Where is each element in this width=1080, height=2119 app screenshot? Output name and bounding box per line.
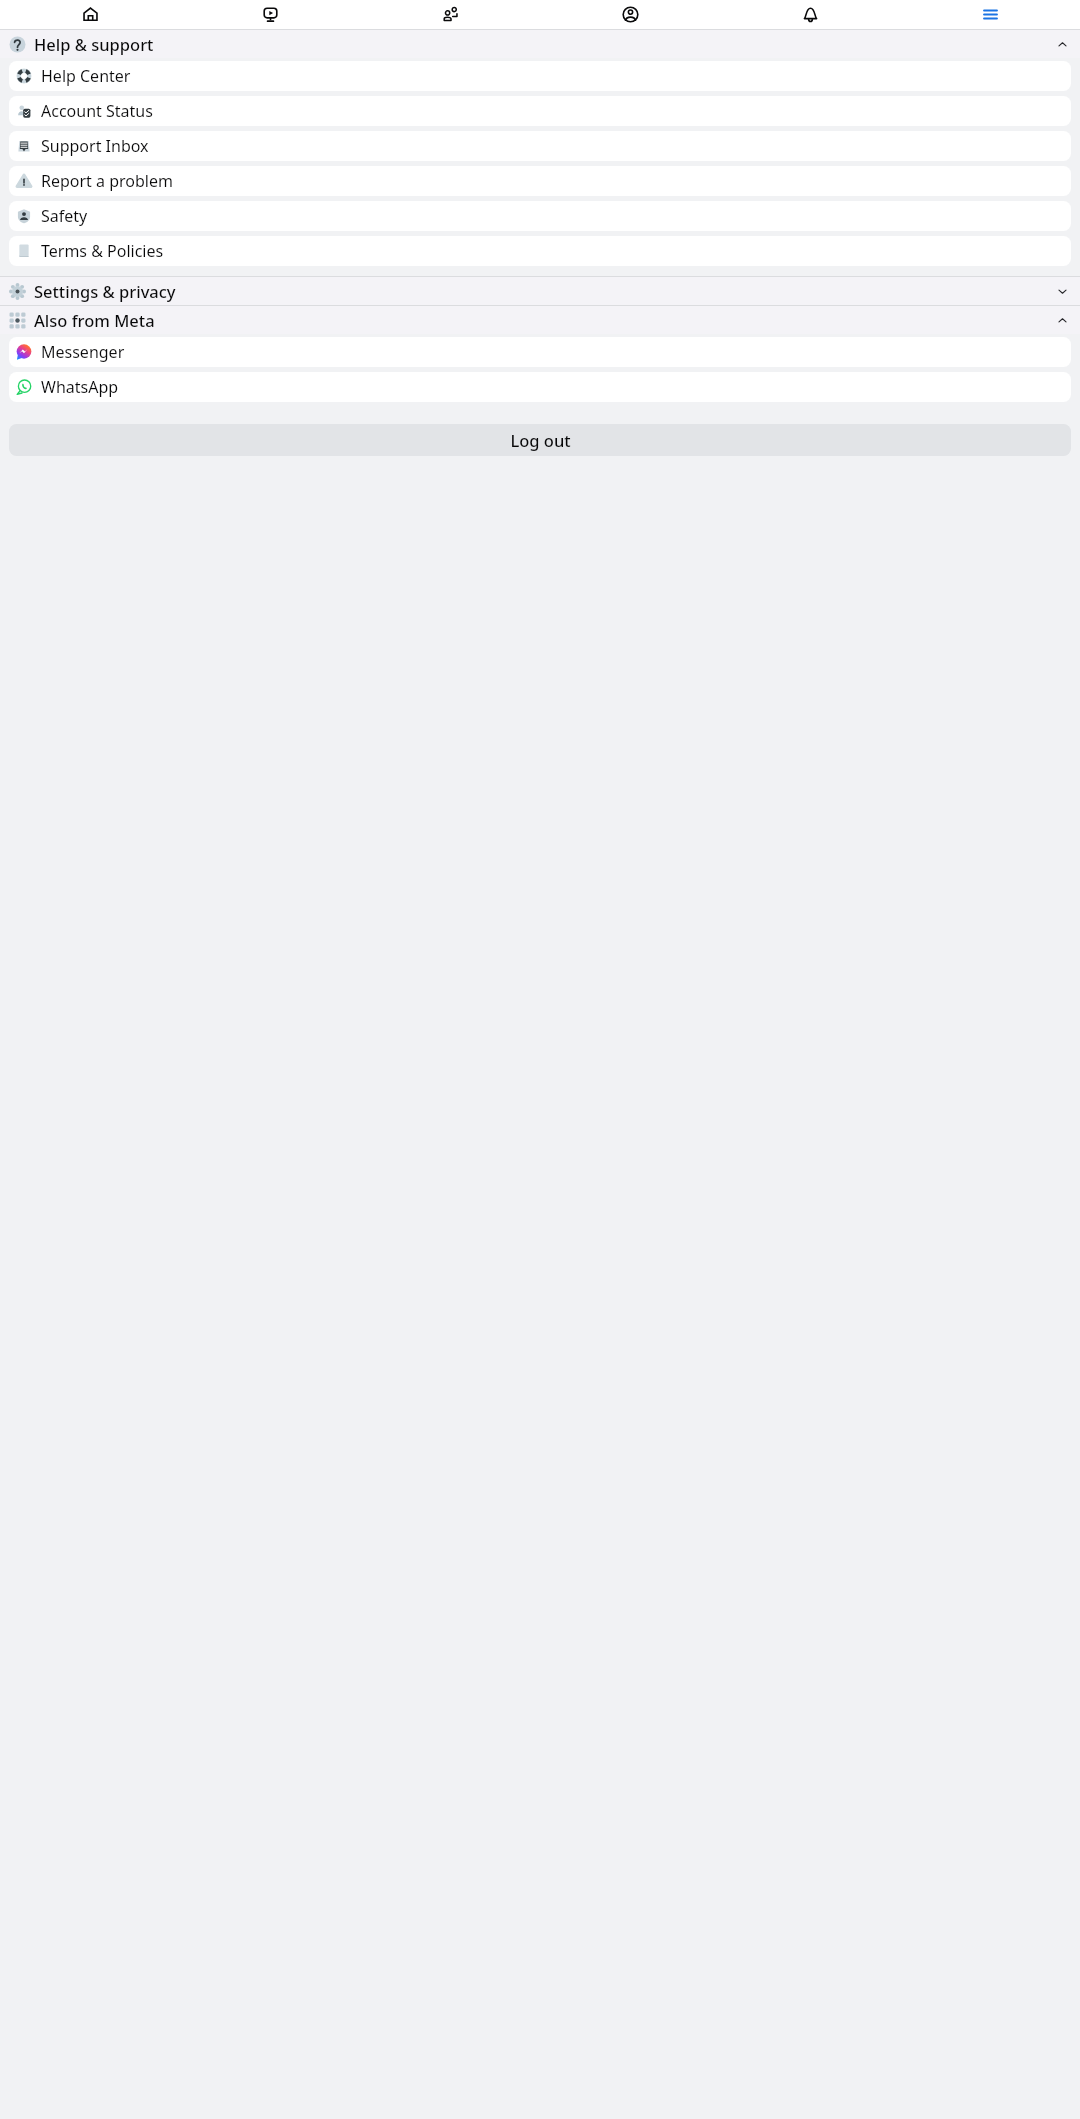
- button[interactable]: Report a problem: [9, 166, 1071, 196]
- button[interactable]: Messenger: [9, 337, 1071, 367]
- staticText: Support Inbox: [41, 135, 149, 157]
- button[interactable]: Friends: [360, 0, 540, 30]
- staticText: Safety: [41, 205, 88, 227]
- button[interactable]: WhatsApp: [9, 372, 1071, 402]
- staticText: Account Status: [41, 100, 153, 122]
- button[interactable]: Video: [180, 0, 360, 30]
- button[interactable]: Terms & Policies: [9, 236, 1071, 266]
- staticText: Log out: [510, 429, 571, 451]
- button[interactable]: Support Inbox: [9, 131, 1071, 161]
- button[interactable]: Expand Settings and privacy: [0, 277, 1080, 305]
- staticText: Messenger: [41, 341, 125, 363]
- button[interactable]: Notifications: [720, 0, 900, 30]
- button[interactable]: Help Center: [9, 61, 1071, 91]
- button[interactable]: Profile: [540, 0, 720, 30]
- staticText: Help & support: [34, 33, 154, 55]
- staticText: Terms & Policies: [41, 240, 164, 262]
- staticText: Settings & privacy: [34, 280, 176, 302]
- staticText: Report a problem: [41, 170, 173, 192]
- staticText: Help Center: [41, 65, 131, 87]
- button[interactable]: Safety: [9, 201, 1071, 231]
- button[interactable]: Collapse Help and support: [0, 30, 1080, 58]
- button[interactable]: Account Status: [9, 96, 1071, 126]
- button[interactable]: Log out: [9, 424, 1071, 456]
- button[interactable]: Menu: [900, 0, 1080, 30]
- staticText: Also from Meta: [34, 309, 155, 331]
- button[interactable]: Collapse Also from Meta: [0, 306, 1080, 334]
- button[interactable]: Home: [0, 0, 180, 30]
- staticText: WhatsApp: [41, 376, 119, 398]
